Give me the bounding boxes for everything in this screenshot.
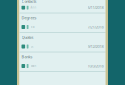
staticText: Contacts <box>21 0 36 4</box>
staticText: 9/12/2018 <box>87 44 103 49</box>
staticText: Quotes <box>21 35 33 40</box>
staticText: 10/3/2018 <box>87 63 103 69</box>
button[interactable]: Ann <box>19 2 105 12</box>
staticText: Main <box>30 64 36 68</box>
staticText: BSc <box>30 25 34 29</box>
staticText: Contacts <box>21 0 36 1</box>
staticText: Ann <box>30 6 36 9</box>
staticText: 7/21/2018 <box>87 24 103 30</box>
staticText: 6/11/2018 <box>87 5 103 10</box>
staticText: Est <box>30 45 33 48</box>
button[interactable]: BSc <box>19 22 105 32</box>
button[interactable]: Est <box>19 41 105 51</box>
button[interactable]: Main <box>19 61 105 71</box>
staticText: Degrees <box>21 15 36 20</box>
staticText: Banks <box>21 54 32 59</box>
